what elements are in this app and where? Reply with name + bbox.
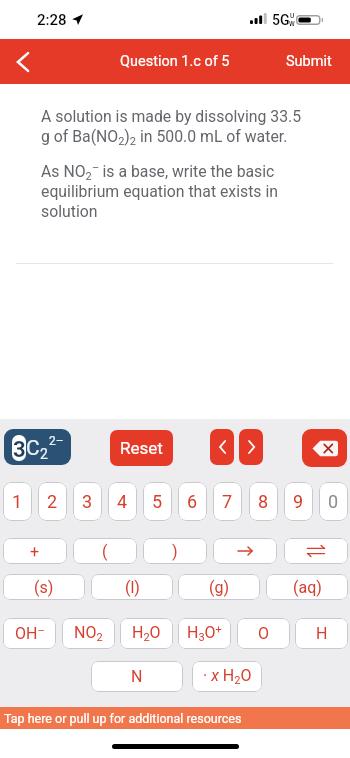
button[interactable]: Reset [110, 430, 173, 466]
button[interactable]: (aq) [266, 574, 348, 600]
button[interactable]: Equilibrium [284, 538, 348, 564]
staticText: 8 [258, 491, 269, 512]
staticText: + [30, 542, 40, 561]
staticText: ( [102, 542, 108, 561]
staticText: – [92, 161, 100, 174]
button[interactable]: Next [239, 429, 263, 465]
staticText: O [258, 624, 270, 643]
staticText: ) [172, 542, 178, 561]
button[interactable]: 6 [178, 482, 207, 521]
staticText: 3 [13, 437, 26, 463]
staticText: 2 [40, 446, 48, 462]
button[interactable]: O [237, 618, 290, 649]
staticText: 6 [187, 491, 198, 512]
button[interactable]: NO2 [62, 618, 115, 649]
staticText: Submit [286, 53, 332, 70]
staticText: C [26, 436, 40, 461]
button[interactable]: (g) [178, 574, 260, 600]
staticText: 2:28 [37, 12, 67, 28]
staticText: (l) [125, 578, 140, 597]
staticText: Tap here or pull up for additional resou… [4, 711, 242, 726]
staticText: solution [41, 203, 98, 221]
staticText: 5G [272, 13, 290, 28]
button[interactable]: Previous [210, 429, 234, 465]
button[interactable]: H [295, 618, 348, 649]
staticText: 9 [293, 491, 304, 512]
staticText: W [289, 20, 295, 28]
staticText: U [290, 12, 295, 20]
staticText: · x H2O [203, 666, 252, 687]
button[interactable]: (s) [3, 574, 85, 600]
button[interactable]: H3O+ [178, 618, 231, 649]
button[interactable]: 8 [249, 482, 278, 521]
staticText: H3O+ [187, 623, 222, 644]
button[interactable]: 2 [38, 482, 67, 521]
staticText: As NO2– is a base, write the basic [41, 163, 275, 187]
staticText: 7 [222, 491, 233, 512]
staticText: 4 [117, 491, 128, 512]
button[interactable]: 1 [3, 482, 32, 521]
button[interactable]: Backspace [302, 429, 347, 467]
staticText: 0 [328, 491, 339, 512]
button[interactable]: 0 [319, 482, 348, 521]
button[interactable]: N [91, 661, 183, 692]
staticText: H [316, 624, 328, 643]
button[interactable]: · x H2O [192, 661, 262, 692]
button[interactable]: Tap here or pull up for additional resou… [0, 707, 350, 729]
staticText: equilibrium equation that exists in [41, 183, 279, 201]
staticText: (aq) [293, 578, 322, 597]
button[interactable]: 3 [73, 482, 102, 521]
button[interactable]: + [3, 538, 67, 564]
button[interactable]: H2O [120, 618, 173, 649]
staticText: g of Ba(NO2)2 in 500.0 mL of water. [41, 128, 288, 152]
button[interactable]: ( [73, 538, 137, 564]
button[interactable]: Submit [264, 39, 350, 84]
staticText: (s) [34, 578, 54, 597]
staticText: 1 [12, 491, 23, 512]
button[interactable]: Yields [213, 538, 277, 564]
staticText: A solution is made by dissolving 33.5 [41, 108, 302, 126]
staticText: 2– [49, 434, 64, 448]
staticText: N [131, 667, 143, 686]
staticText: NO2 [74, 623, 103, 644]
staticText: Question 1.c of 5 [120, 53, 230, 70]
staticText: 3 [82, 491, 93, 512]
button[interactable]: Back [0, 39, 46, 84]
button[interactable]: 5 [143, 482, 172, 521]
button[interactable]: OH– [3, 618, 56, 649]
button[interactable]: ) [143, 538, 207, 564]
staticText: Reset [120, 438, 163, 458]
staticText: 5 [152, 491, 163, 512]
staticText: H2O [132, 623, 161, 644]
button[interactable]: 4 [108, 482, 137, 521]
button[interactable]: 9 [284, 482, 313, 521]
staticText: 2 [47, 491, 58, 512]
staticText: (g) [209, 578, 230, 597]
staticText: OH– [15, 624, 45, 643]
button[interactable]: (l) [91, 574, 173, 600]
button[interactable]: 3 [4, 429, 71, 465]
button[interactable]: 7 [213, 482, 242, 521]
